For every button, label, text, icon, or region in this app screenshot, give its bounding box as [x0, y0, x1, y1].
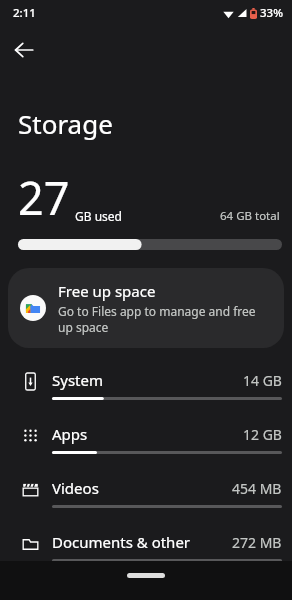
- staticText: 454 MB: [232, 479, 282, 498]
- button[interactable]: Videos: [0, 466, 292, 520]
- staticText: GB used: [75, 208, 122, 224]
- staticText: 27: [18, 167, 70, 228]
- staticText: Storage: [18, 106, 113, 141]
- staticText: 33%: [260, 5, 283, 21]
- button[interactable]: Apps: [0, 412, 292, 466]
- staticText: Go to Files app to manage and free up sp…: [58, 303, 270, 335]
- staticText: 2:11: [13, 5, 36, 21]
- staticText: Documents & other: [52, 532, 232, 552]
- button[interactable]: Back: [0, 26, 48, 74]
- staticText: 64 GB total: [220, 208, 280, 224]
- staticText: 12 GB: [243, 425, 282, 444]
- staticText: 272 MB: [232, 533, 282, 552]
- button[interactable]: Documents & other: [0, 520, 292, 574]
- staticText: Videos: [52, 478, 232, 498]
- button[interactable]: Free up space: [8, 268, 284, 348]
- button[interactable]: System: [0, 358, 292, 412]
- staticText: 14 GB: [243, 371, 282, 390]
- staticText: Apps: [52, 424, 243, 444]
- staticText: System: [52, 370, 243, 390]
- staticText: Free up space: [58, 281, 156, 301]
